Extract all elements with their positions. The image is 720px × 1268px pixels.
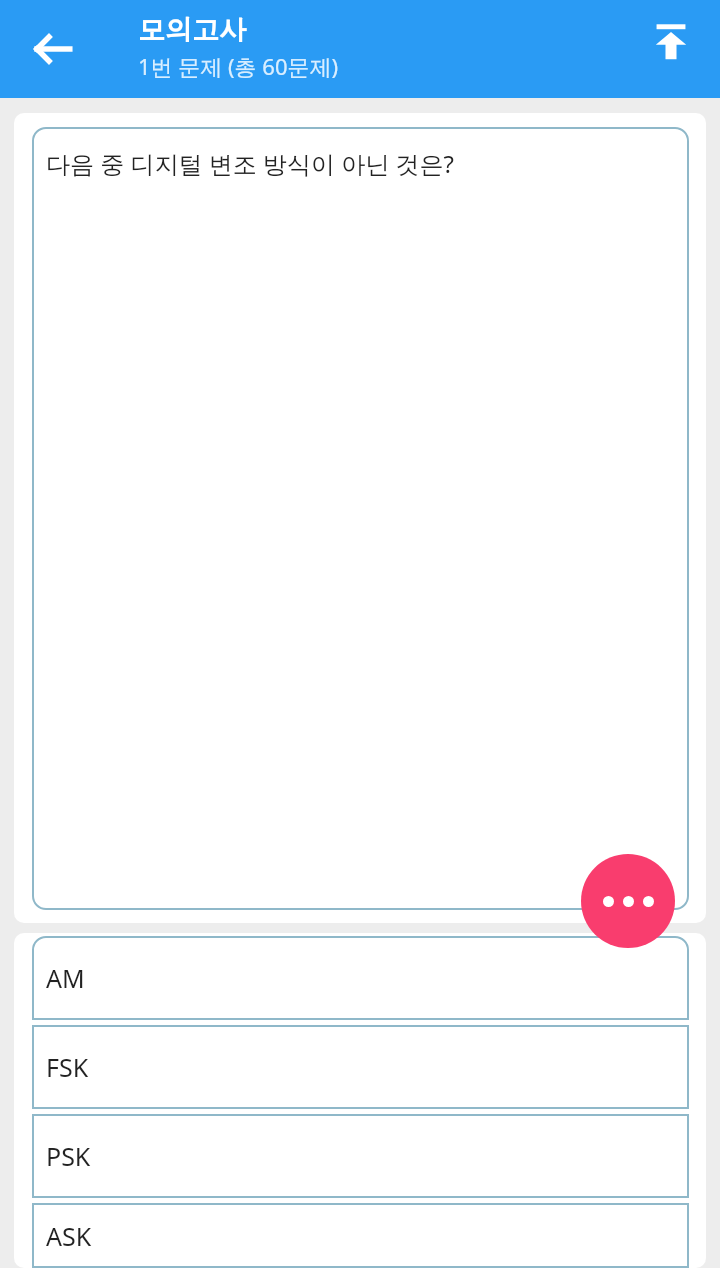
staticText: PSK	[46, 1139, 91, 1173]
button[interactable]: Submit	[638, 8, 704, 74]
button[interactable]: 다음 중 디지털 변조 방식이 아닌 것은?	[32, 127, 689, 910]
button[interactable]: AM	[32, 936, 689, 1020]
staticText: AM	[46, 961, 85, 995]
staticText: 1번 문제 (총 60문제)	[138, 51, 339, 81]
button[interactable]: More options	[581, 854, 675, 948]
staticText: ASK	[46, 1219, 92, 1253]
button[interactable]: PSK	[32, 1114, 689, 1198]
staticText: 모의고사	[138, 13, 246, 47]
button[interactable]: Back	[20, 16, 86, 82]
button[interactable]: ASK	[32, 1203, 689, 1268]
staticText: 다음 중 디지털 변조 방식이 아닌 것은?	[46, 147, 454, 180]
staticText: FSK	[46, 1050, 89, 1084]
button[interactable]: FSK	[32, 1025, 689, 1109]
